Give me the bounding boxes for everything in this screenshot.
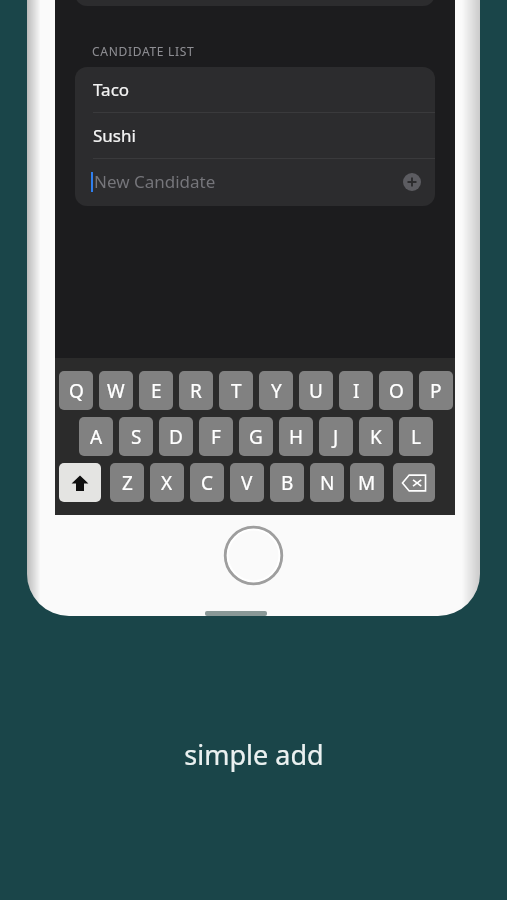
staticText: F [211, 424, 221, 450]
button[interactable]: New Candidate [75, 159, 435, 204]
staticText: P [430, 378, 442, 404]
staticText: CANDIDATE LIST [92, 43, 195, 59]
staticText: L [411, 424, 421, 450]
staticText: M [358, 470, 376, 496]
button[interactable]: S [119, 417, 153, 456]
button[interactable]: V [230, 463, 264, 502]
staticText: E [151, 378, 162, 404]
button[interactable]: Y [259, 371, 293, 410]
button[interactable]: N [310, 463, 344, 502]
staticText: S [131, 424, 142, 450]
staticText: Taco [93, 78, 130, 101]
staticText: New Candidate [94, 170, 216, 193]
button[interactable]: X [150, 463, 184, 502]
button[interactable]: L [399, 417, 433, 456]
button[interactable]: G [239, 417, 273, 456]
button[interactable]: P [419, 371, 453, 410]
staticText: Z [122, 470, 133, 496]
button[interactable]: B [270, 463, 304, 502]
button[interactable]: Taco [75, 67, 435, 112]
button[interactable]: Backspace [393, 463, 435, 502]
button[interactable]: T [219, 371, 253, 410]
button[interactable]: M [350, 463, 384, 502]
button[interactable]: E [139, 371, 173, 410]
staticText: U [309, 378, 323, 404]
staticText: H [289, 424, 304, 450]
button[interactable]: F [199, 417, 233, 456]
staticText: simple add [184, 736, 324, 773]
staticText: T [231, 378, 242, 404]
button[interactable]: Add candidate [403, 173, 421, 191]
staticText: I [353, 378, 360, 404]
button[interactable]: U [299, 371, 333, 410]
button[interactable]: D [159, 417, 193, 456]
button[interactable]: Shift [59, 463, 101, 502]
staticText: V [241, 470, 253, 496]
button[interactable]: C [190, 463, 224, 502]
button[interactable]: O [379, 371, 413, 410]
staticText: C [201, 470, 214, 496]
button[interactable]: Sushi [75, 113, 435, 158]
button[interactable]: R [179, 371, 213, 410]
staticText: A [90, 424, 103, 450]
staticText: Y [271, 378, 282, 404]
staticText: J [333, 424, 339, 450]
staticText: Sushi [93, 124, 136, 147]
button[interactable]: Q [59, 371, 93, 410]
staticText: R [190, 378, 202, 404]
staticText: X [161, 470, 173, 496]
button[interactable]: Z [110, 463, 144, 502]
button[interactable]: I [339, 371, 373, 410]
staticText: O [389, 378, 404, 404]
button[interactable]: J [319, 417, 353, 456]
button[interactable]: W [99, 371, 133, 410]
button[interactable]: K [359, 417, 393, 456]
staticText: Q [69, 378, 84, 404]
staticText: G [249, 424, 263, 450]
button[interactable]: H [279, 417, 313, 456]
staticText: B [281, 470, 294, 496]
staticText: N [320, 470, 335, 496]
button[interactable]: A [79, 417, 113, 456]
staticText: W [107, 378, 125, 404]
staticText: K [370, 424, 382, 450]
button[interactable]: Home [224, 526, 283, 585]
staticText: D [169, 424, 183, 450]
